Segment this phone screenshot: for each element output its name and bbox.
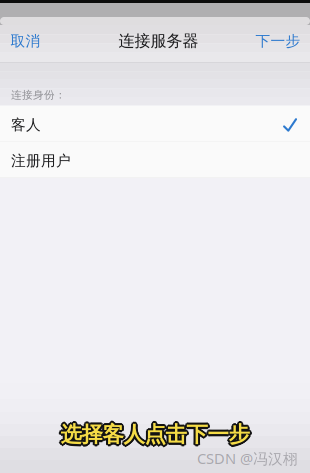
staticText: 选择客人点击下一步 [59, 423, 248, 449]
staticText: CSDN @冯汉栩 [197, 448, 298, 468]
staticText: 选择客人点击下一步 [59, 420, 248, 446]
staticText: 连接服务器 [118, 31, 198, 51]
staticText: 下一步 [255, 32, 300, 50]
button[interactable]: 注册用户 [0, 142, 310, 178]
staticText: 选择客人点击下一步 [58, 422, 247, 448]
staticText: 注册用户 [11, 152, 71, 170]
button[interactable]: 下一步 [245, 17, 310, 62]
button[interactable]: 客人 [0, 106, 310, 142]
staticText: 选择客人点击下一步 [60, 423, 249, 449]
staticText: 选择客人点击下一步 [62, 423, 251, 449]
staticText: 选择客人点击下一步 [60, 420, 249, 446]
staticText: 选择客人点击下一步 [60, 421, 249, 447]
staticText: 连接身份： [11, 88, 66, 102]
staticText: 选择客人点击下一步 [60, 423, 249, 450]
staticText: 选择客人点击下一步 [62, 420, 251, 446]
staticText: 取消 [10, 32, 40, 50]
staticText: 选择客人点击下一步 [62, 421, 251, 447]
staticText: 选择客人点击下一步 [60, 419, 249, 445]
button[interactable]: 取消 [0, 17, 50, 62]
staticText: 选择客人点击下一步 [59, 421, 248, 447]
staticText: 客人 [11, 116, 41, 134]
staticText: 选择客人点击下一步 [63, 422, 252, 448]
